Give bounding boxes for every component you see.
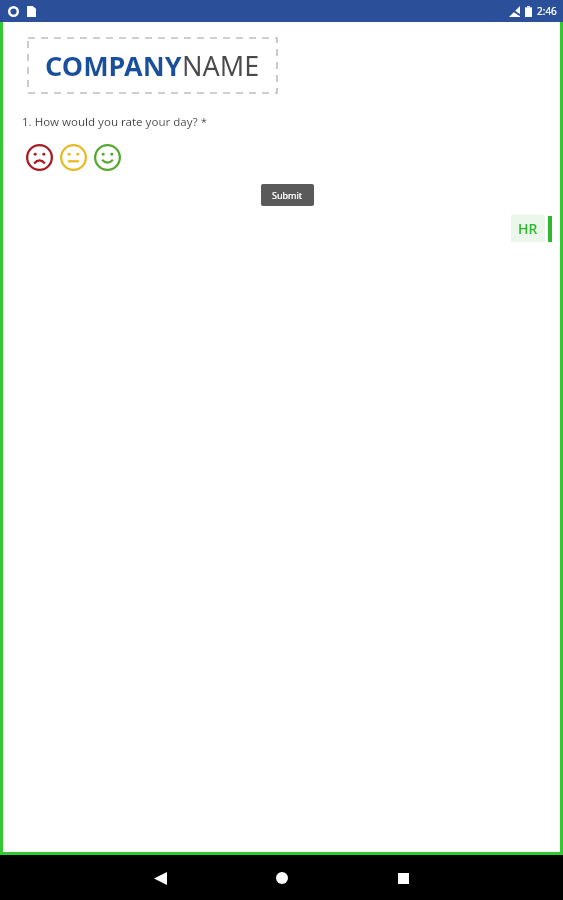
staticText: COMPANY bbox=[45, 47, 182, 84]
button[interactable]: Rate good bbox=[92, 142, 123, 173]
staticText: 2:46 bbox=[537, 4, 557, 18]
staticText: Submit bbox=[272, 189, 303, 201]
staticText: HR bbox=[518, 219, 538, 238]
button[interactable]: Recent apps bbox=[381, 856, 425, 900]
staticText: 1. How would you rate your day? * bbox=[22, 114, 208, 130]
button[interactable]: Rate neutral bbox=[58, 142, 89, 173]
button[interactable]: HR bbox=[511, 215, 545, 242]
button[interactable]: Home bbox=[260, 856, 304, 900]
button[interactable]: Back bbox=[138, 856, 182, 900]
button[interactable]: Rate bad bbox=[24, 142, 55, 173]
staticText: NAME bbox=[182, 47, 260, 84]
button[interactable]: Submit bbox=[261, 184, 314, 206]
